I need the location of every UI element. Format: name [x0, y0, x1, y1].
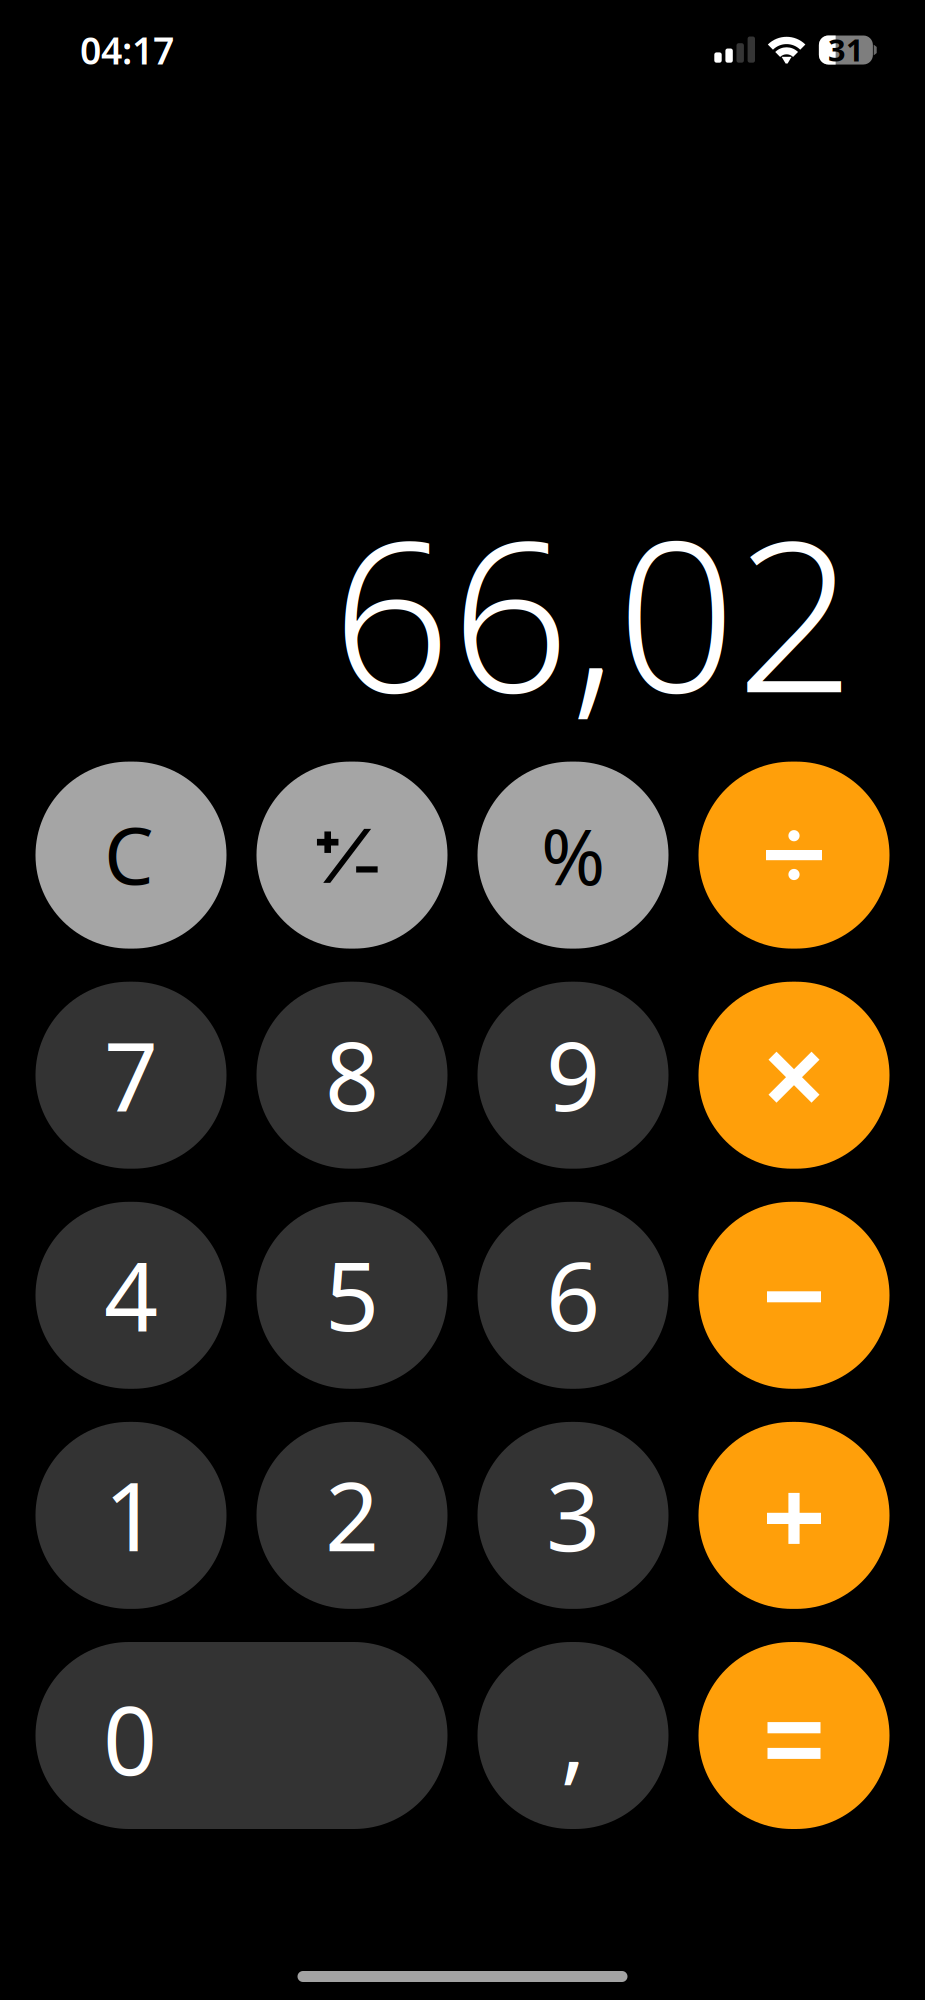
staticText: 2 — [325, 1451, 379, 1577]
staticText: 7 — [104, 1011, 158, 1137]
button[interactable]: % — [477, 762, 668, 949]
button[interactable]: 7 — [35, 982, 226, 1169]
staticText: 04:17 — [80, 25, 174, 75]
staticText: 4 — [104, 1231, 158, 1357]
button[interactable]: Divide — [698, 762, 889, 949]
staticText: 9 — [546, 1011, 600, 1137]
button[interactable]: Plus — [698, 1422, 889, 1609]
staticText: 3 — [546, 1451, 600, 1577]
staticText: 1 — [104, 1451, 158, 1577]
button[interactable]: 3 — [477, 1422, 668, 1609]
button[interactable]: , — [477, 1642, 668, 1829]
button[interactable]: 4 — [35, 1202, 226, 1389]
button[interactable]: Equals — [698, 1642, 889, 1829]
button[interactable]: Multiply — [698, 982, 889, 1169]
button[interactable]: Minus — [698, 1202, 889, 1389]
staticText: 5 — [325, 1231, 379, 1357]
button[interactable]: 0 — [35, 1642, 447, 1829]
button[interactable]: 9 — [477, 982, 668, 1169]
staticText: 66,02 — [332, 473, 855, 750]
button[interactable]: 1 — [35, 1422, 226, 1609]
staticText: 0 — [103, 1676, 157, 1801]
staticText: % — [541, 804, 605, 906]
button[interactable]: Plus or minus — [256, 762, 447, 949]
button[interactable]: 8 — [256, 982, 447, 1169]
staticText: 6 — [546, 1231, 600, 1357]
button[interactable]: 2 — [256, 1422, 447, 1609]
staticText: 31 — [828, 29, 864, 70]
button[interactable]: C — [35, 762, 226, 949]
staticText: , — [560, 1674, 585, 1799]
button[interactable]: 5 — [256, 1202, 447, 1389]
staticText: C — [104, 802, 154, 906]
button[interactable]: 6 — [477, 1202, 668, 1389]
staticText: 8 — [325, 1011, 379, 1137]
